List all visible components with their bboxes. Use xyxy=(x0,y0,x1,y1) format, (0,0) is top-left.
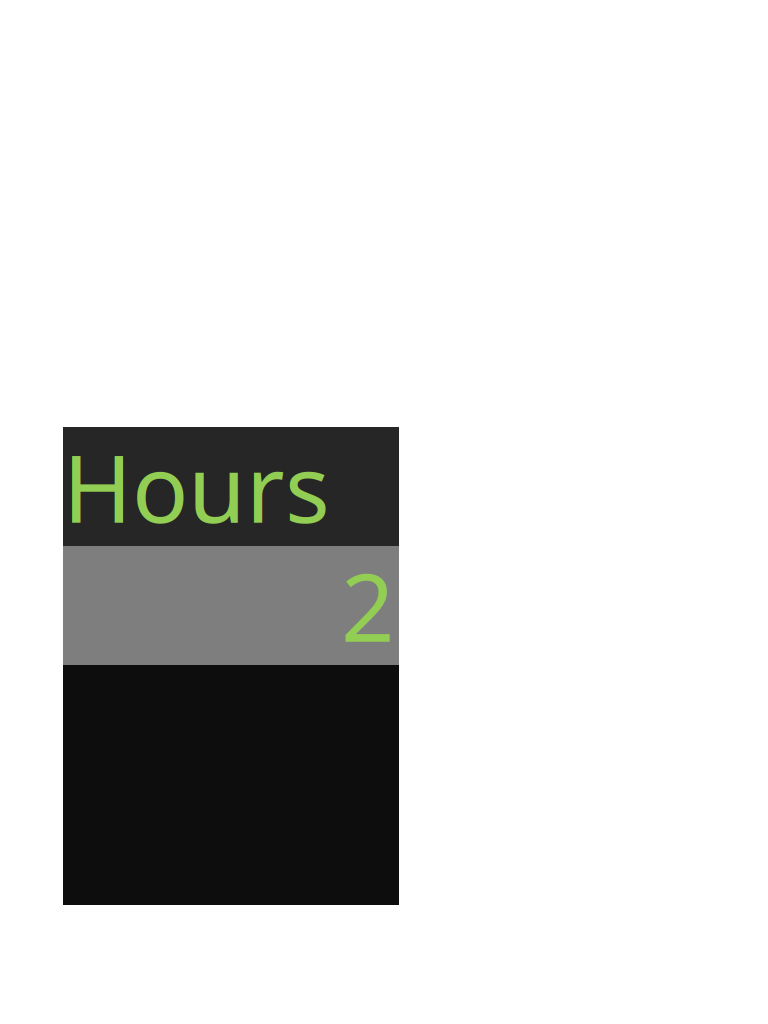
button[interactable]: 2 xyxy=(63,546,399,665)
staticText: Hours xyxy=(63,424,330,548)
button[interactable]: Hours xyxy=(63,427,399,546)
staticText: 2 xyxy=(341,543,394,667)
